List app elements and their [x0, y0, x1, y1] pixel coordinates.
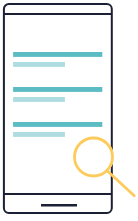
button[interactable]: Search in app illustration: [0, 0, 138, 221]
